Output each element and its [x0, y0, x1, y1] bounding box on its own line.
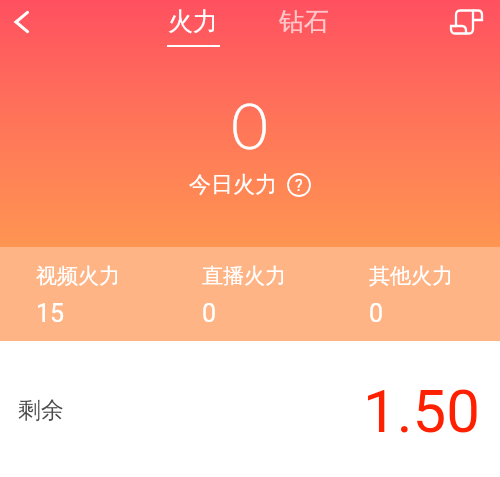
- staticText: 视频火力: [36, 263, 120, 289]
- staticText: 其他火力: [369, 263, 453, 289]
- staticText: 0: [231, 86, 269, 163]
- staticText: 0: [202, 299, 217, 328]
- button[interactable]: 钻石: [273, 6, 335, 37]
- button[interactable]: 剩余: [0, 344, 500, 477]
- staticText: ?: [295, 176, 303, 195]
- staticText: 剩余: [18, 396, 64, 425]
- button[interactable]: 火力: [158, 6, 228, 47]
- staticText: 15: [36, 299, 65, 328]
- staticText: 火力: [168, 6, 218, 37]
- button[interactable]: Back: [0, 0, 46, 46]
- staticText: 0: [369, 299, 384, 328]
- button[interactable]: Help: [287, 173, 311, 197]
- staticText: 直播火力: [202, 263, 286, 289]
- button[interactable]: Records: [444, 0, 488, 44]
- staticText: 1.50: [363, 376, 480, 446]
- staticText: 钻石: [279, 6, 329, 37]
- staticText: 今日火力: [189, 171, 277, 199]
